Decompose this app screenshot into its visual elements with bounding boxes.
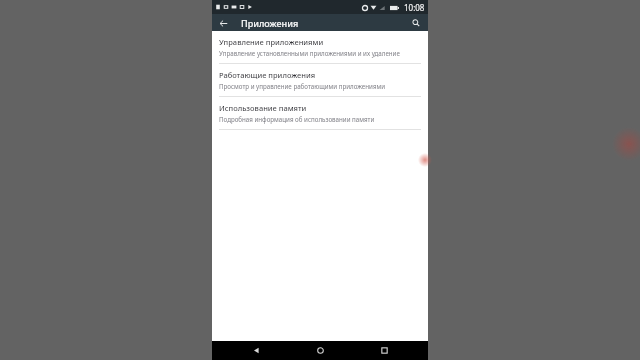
button[interactable]: Использование памяти (212, 97, 428, 129)
staticText: 10:08 (404, 2, 425, 13)
staticText: Приложения (241, 17, 299, 29)
staticText: Подробная информация об использовании па… (219, 115, 375, 123)
button[interactable]: Search (409, 16, 423, 30)
button[interactable]: Back (216, 16, 230, 30)
button[interactable]: Recent apps (364, 341, 404, 360)
staticText: Просмотр и управление работающими прилож… (219, 82, 386, 90)
button[interactable]: Home (300, 341, 340, 360)
staticText: Управление приложениями (219, 37, 324, 47)
staticText: Управление установленными приложениями и… (219, 49, 400, 57)
button[interactable]: Работающие приложения (212, 64, 428, 96)
button[interactable]: Управление приложениями (212, 31, 428, 63)
staticText: Использование памяти (219, 103, 307, 113)
staticText: Работающие приложения (219, 70, 316, 80)
button[interactable]: Back (236, 341, 276, 360)
